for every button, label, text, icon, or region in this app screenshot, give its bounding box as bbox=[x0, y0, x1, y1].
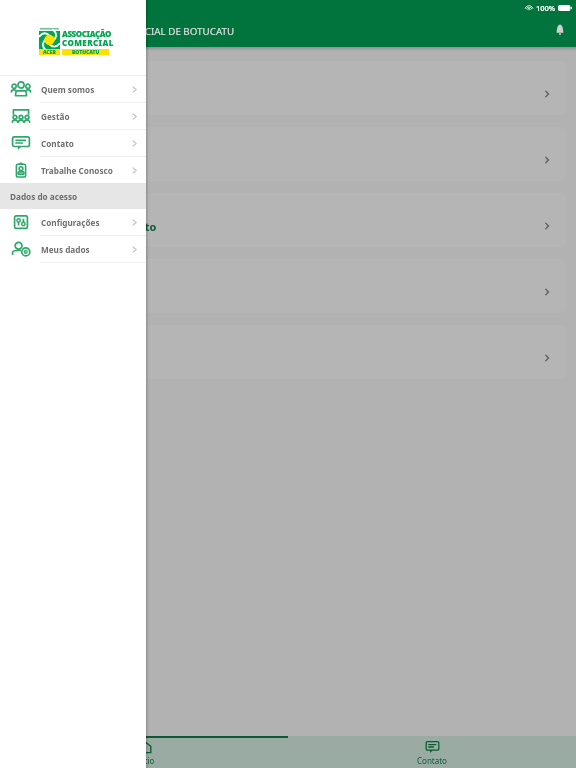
button[interactable]: Parceiros bbox=[10, 325, 566, 379]
button[interactable]: Trabalhe Conosco bbox=[0, 157, 146, 183]
staticText: ASSOCIAÇÃO COMERCIAL DE BOTUCATU bbox=[48, 25, 235, 38]
staticText: ASSOCIAÇÃO bbox=[62, 28, 111, 39]
staticText: Início bbox=[134, 755, 155, 766]
staticText: Configurações bbox=[41, 217, 100, 228]
button[interactable]: Convênios bbox=[10, 259, 566, 313]
staticText: Contato bbox=[41, 138, 74, 149]
button[interactable]: Meus dados bbox=[0, 236, 146, 262]
staticText: Atendimento bbox=[84, 219, 157, 234]
button[interactable]: Contato bbox=[288, 736, 576, 768]
button[interactable]: Atendimento bbox=[10, 193, 566, 247]
staticText: BOTUCATU bbox=[72, 49, 100, 55]
button[interactable]: Configurações bbox=[0, 209, 146, 235]
staticText: Dados do acesso bbox=[10, 191, 78, 202]
staticText: COMERCIAL bbox=[62, 37, 114, 48]
button[interactable]: Associados bbox=[10, 127, 566, 181]
button[interactable]: Contato bbox=[0, 130, 146, 156]
staticText: Meus dados bbox=[41, 244, 90, 255]
staticText: Institucional bbox=[36, 87, 106, 102]
button[interactable]: Quem somos bbox=[0, 76, 146, 102]
staticText: Contato bbox=[417, 755, 447, 766]
button[interactable]: Gestão bbox=[0, 103, 146, 129]
button[interactable]: Início bbox=[0, 736, 288, 768]
staticText: Associados bbox=[40, 153, 101, 168]
button[interactable]: Institucional bbox=[10, 61, 566, 115]
staticText: Gestão bbox=[41, 111, 70, 122]
button[interactable]: Notificações bbox=[545, 15, 575, 45]
staticText: Trabalhe Conosco bbox=[41, 165, 113, 176]
staticText: ACEB bbox=[43, 49, 56, 55]
staticText: 100% bbox=[536, 3, 556, 13]
staticText: Quem somos bbox=[41, 84, 95, 95]
